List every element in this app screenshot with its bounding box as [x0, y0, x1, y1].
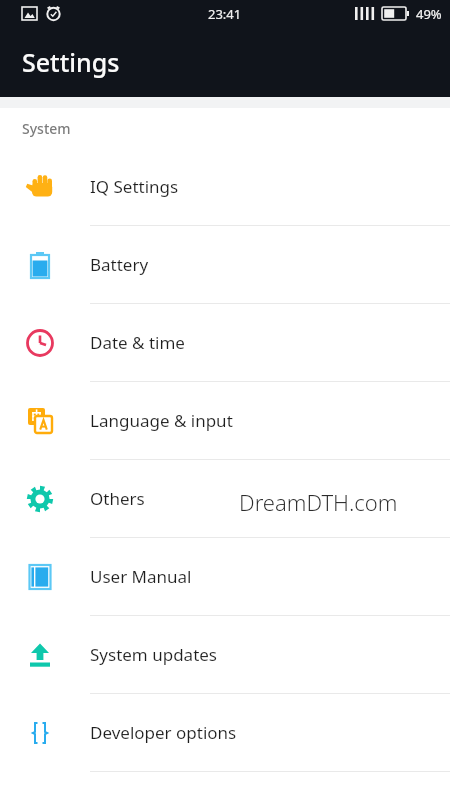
staticText: DreamDTH.com: [239, 487, 398, 517]
staticText: User Manual: [90, 565, 192, 588]
staticText: 49%: [416, 5, 442, 23]
staticText: System: [22, 119, 71, 138]
staticText: Settings: [22, 45, 120, 79]
staticText: Date & time: [90, 331, 185, 354]
staticText: Developer options: [90, 721, 237, 744]
button[interactable]: IQ Settings: [0, 148, 450, 226]
button[interactable]: Language & input: [0, 382, 450, 460]
staticText: Battery: [90, 253, 149, 276]
button[interactable]: System updates: [0, 616, 450, 694]
button[interactable]: Others: [0, 460, 450, 538]
button[interactable]: Battery: [0, 226, 450, 304]
button[interactable]: Developer options: [0, 694, 450, 772]
button[interactable]: User Manual: [0, 538, 450, 616]
staticText: Language & input: [90, 409, 233, 432]
button[interactable]: Date & time: [0, 304, 450, 382]
staticText: 23:41: [208, 5, 242, 23]
staticText: IQ Settings: [90, 175, 179, 198]
staticText: Others: [90, 487, 145, 510]
staticText: System updates: [90, 643, 218, 666]
